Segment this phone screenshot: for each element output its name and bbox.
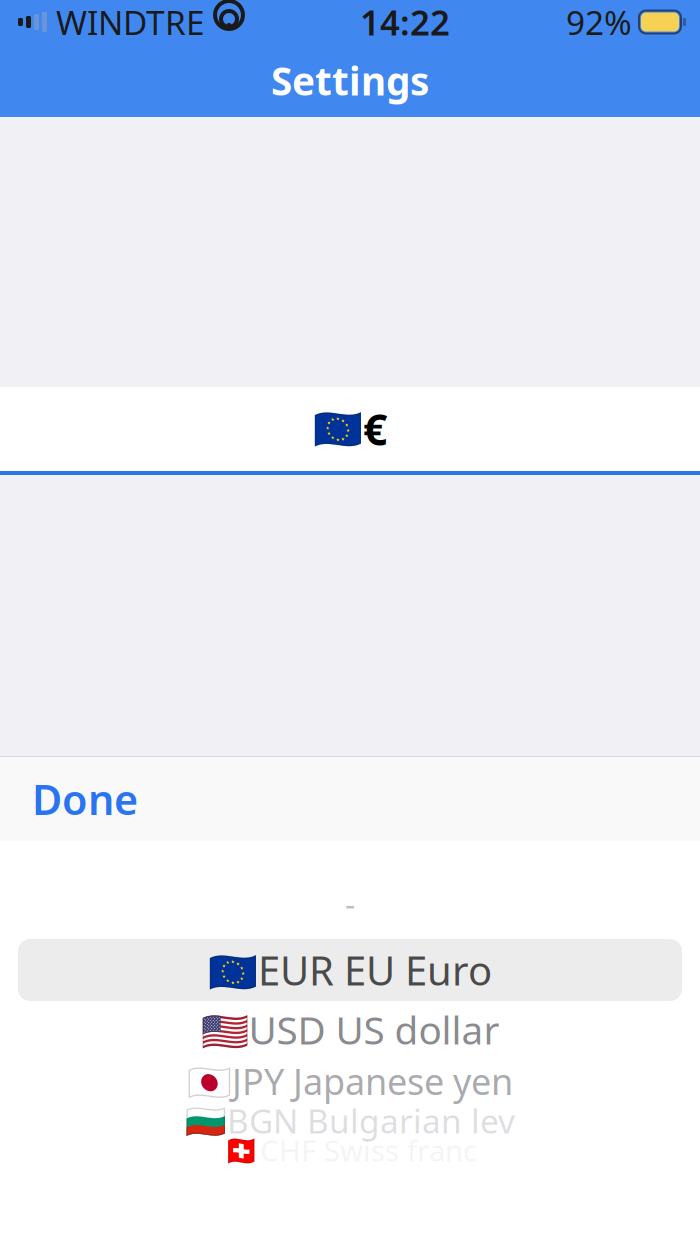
button[interactable]: Done (0, 757, 700, 841)
staticText: 92% (566, 0, 632, 44)
staticText: WINDTRE (56, 0, 205, 44)
button[interactable]: Selected currency: EU Euro (0, 387, 700, 471)
staticText: - (345, 883, 355, 925)
staticText: 🇨🇭CHF Swiss franc (223, 1130, 477, 1169)
button[interactable]: 🇧🇬BGN Bulgarian lev (0, 1104, 700, 1137)
button[interactable]: 🇪🇺EUR EU Euro (18, 939, 682, 1001)
staticText: 🇪🇺EUR EU Euro (208, 943, 492, 996)
staticText: 🇧🇬BGN Bulgarian lev (185, 1098, 515, 1143)
staticText: € (363, 401, 387, 457)
staticText: 🇯🇵JPY Japanese yen (187, 1057, 513, 1105)
button[interactable]: 🇯🇵JPY Japanese yen (0, 1058, 700, 1104)
staticText: Settings (271, 55, 429, 106)
button[interactable]: 🇨🇭CHF Swiss franc (0, 1137, 700, 1163)
staticText: 🇪🇺 (313, 406, 363, 452)
button[interactable]: 🇺🇸USD US dollar (0, 1001, 700, 1058)
staticText: 🇺🇸USD US dollar (200, 1004, 499, 1055)
staticText: 14:22 (360, 0, 450, 45)
staticText: Done (32, 772, 138, 826)
